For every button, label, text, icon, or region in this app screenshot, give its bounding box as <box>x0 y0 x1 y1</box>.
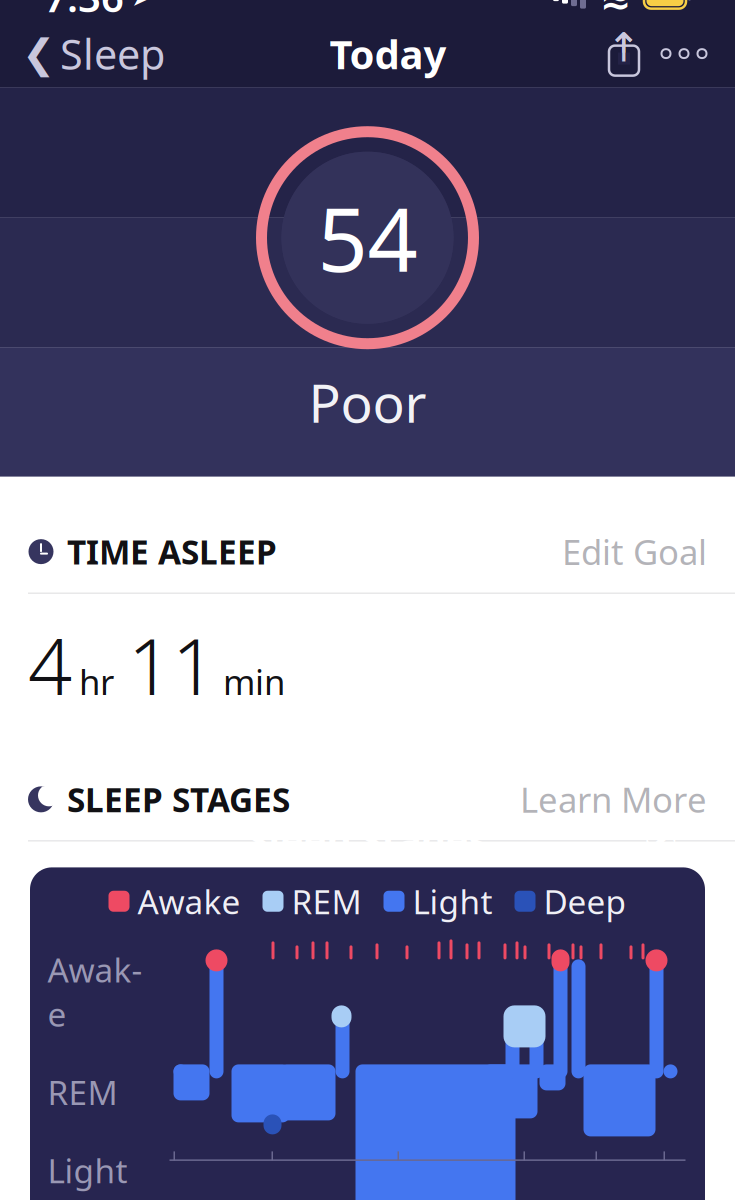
button[interactable]: More options <box>647 27 721 81</box>
staticText: ❮ <box>22 31 56 76</box>
staticText: SLEEP STAGES <box>67 777 290 821</box>
staticText: Today <box>329 27 446 80</box>
button[interactable]: Expand chart <box>635 816 687 862</box>
staticText: Poor <box>308 367 426 437</box>
staticText: Sleep <box>60 26 165 81</box>
staticText: Deep <box>543 879 626 923</box>
staticText: REM <box>291 879 361 923</box>
staticText: ↑ <box>607 25 641 70</box>
staticText: 54 <box>317 179 417 296</box>
staticText: ➤ <box>131 0 153 12</box>
button[interactable]: Share <box>601 27 647 81</box>
staticText: 11 <box>128 614 216 716</box>
button[interactable]: Edit Goal <box>542 523 707 581</box>
staticText: Light <box>412 879 492 923</box>
staticText: Awake <box>47 947 142 1036</box>
button[interactable]: Sleep Stages <box>0 841 735 1200</box>
staticText: hr <box>79 658 114 704</box>
staticText: 4 <box>28 614 72 716</box>
staticText: min <box>223 658 285 704</box>
staticText: ↑ <box>607 25 641 70</box>
button[interactable]: Learn More <box>500 770 707 828</box>
staticText: REM <box>47 1070 117 1114</box>
staticText: Awake <box>137 879 240 923</box>
staticText: Edit Goal <box>562 529 707 575</box>
staticText: ⤢ <box>638 809 683 870</box>
staticText: Light <box>47 1148 127 1192</box>
button[interactable]: ❮ <box>22 18 175 89</box>
staticText: TIME ASLEEP <box>67 529 277 574</box>
staticText: 7:36 <box>44 0 124 23</box>
staticText: Learn More <box>520 776 707 822</box>
staticText: ≋ <box>600 0 631 18</box>
